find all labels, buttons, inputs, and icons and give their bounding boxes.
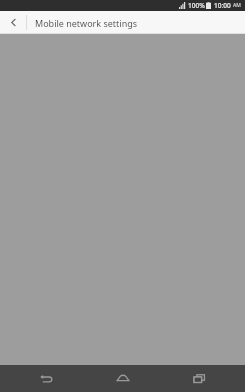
button[interactable]: Back [16, 365, 76, 392]
button[interactable]: Back [0, 11, 26, 34]
staticText: 100% [188, 1, 205, 10]
staticText: AM [233, 2, 241, 9]
button[interactable]: Recent apps [169, 365, 229, 392]
button[interactable]: Home [93, 365, 153, 392]
staticText: 10:00 [214, 1, 233, 10]
staticText: Mobile network settings [35, 17, 138, 29]
